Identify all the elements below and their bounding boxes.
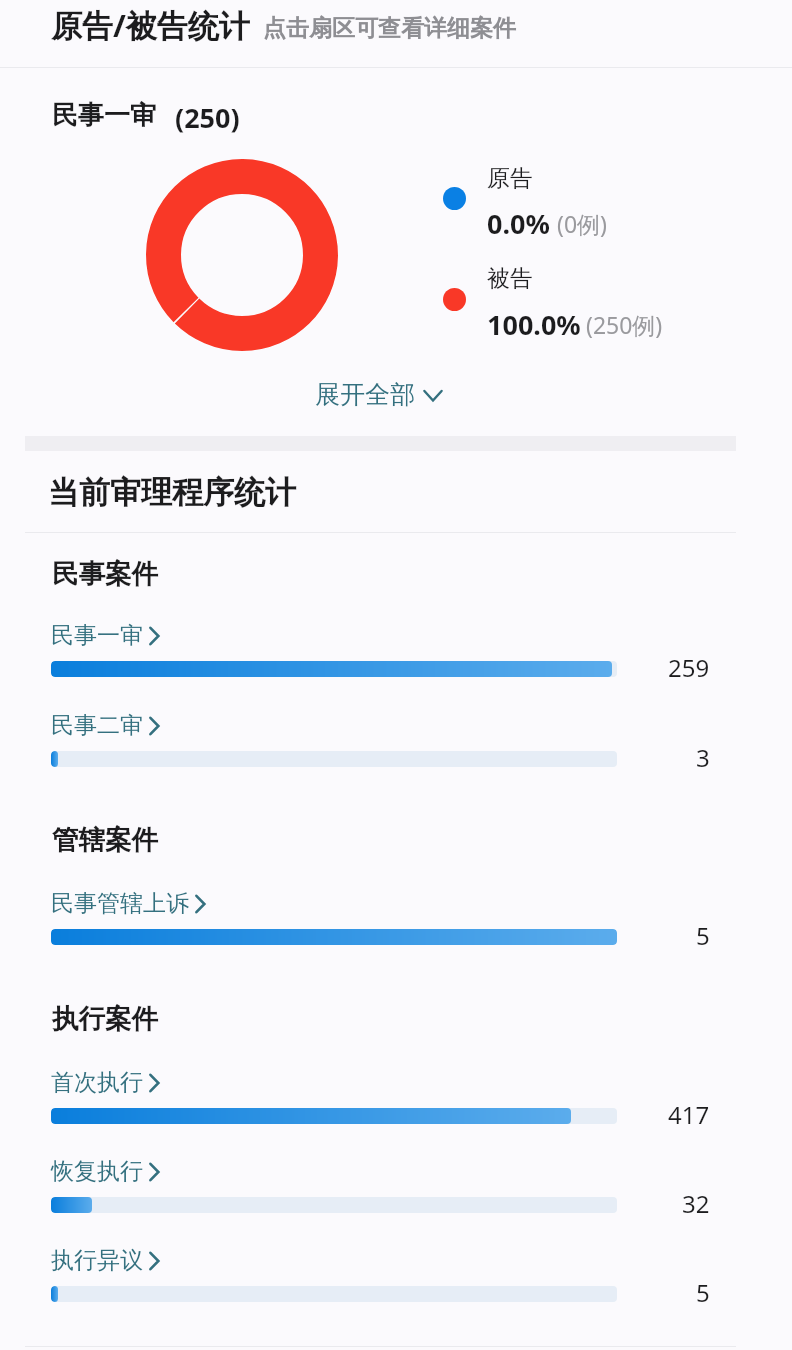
staticText: 展开全部 bbox=[315, 379, 415, 410]
staticText: 417 bbox=[668, 1098, 710, 1126]
staticText: 民事二审 bbox=[51, 711, 143, 740]
staticText: 3 bbox=[696, 741, 710, 769]
staticText: 民事案件 bbox=[52, 557, 158, 590]
staticText: 恢复执行 bbox=[51, 1157, 143, 1186]
staticText: 原告 bbox=[487, 164, 533, 193]
button[interactable]: 被告图例 bbox=[443, 288, 466, 311]
staticText: 当前审理程序统计 bbox=[48, 473, 296, 512]
staticText: 被告 bbox=[487, 264, 533, 293]
staticText: 5 bbox=[696, 1276, 710, 1304]
button[interactable]: 民事一审 bbox=[25, 609, 736, 689]
staticText: 259 bbox=[668, 651, 710, 679]
staticText: 执行案件 bbox=[52, 1002, 158, 1035]
staticText: 点击扇区可查看详细案件 bbox=[263, 14, 516, 43]
button[interactable]: 被告 100% 扇区 bbox=[145, 158, 339, 352]
button[interactable]: 首次执行 bbox=[25, 1056, 736, 1136]
staticText: 首次执行 bbox=[51, 1068, 143, 1097]
button[interactable]: 执行异议 bbox=[25, 1234, 736, 1314]
staticText: 0.0% bbox=[487, 205, 550, 242]
staticText: (250例) bbox=[586, 309, 663, 340]
button[interactable]: 展开全部 bbox=[315, 377, 443, 411]
button[interactable]: 民事二审 bbox=[25, 699, 736, 779]
staticText: (250) bbox=[175, 99, 240, 136]
staticText: 民事一审 bbox=[52, 99, 156, 132]
staticText: 32 bbox=[682, 1187, 710, 1215]
staticText: 民事一审 bbox=[51, 621, 143, 650]
button[interactable]: 恢复执行 bbox=[25, 1145, 736, 1225]
staticText: 原告/被告统计 bbox=[51, 4, 250, 46]
button[interactable]: 民事管辖上诉 bbox=[25, 877, 736, 957]
staticText: 民事管辖上诉 bbox=[51, 889, 189, 918]
staticText: 执行异议 bbox=[51, 1246, 143, 1275]
staticText: 100.0% bbox=[487, 306, 581, 343]
staticText: 5 bbox=[696, 919, 710, 947]
button[interactable]: 原告图例 bbox=[443, 187, 466, 210]
staticText: 管辖案件 bbox=[52, 823, 158, 856]
staticText: (0例) bbox=[557, 208, 607, 239]
